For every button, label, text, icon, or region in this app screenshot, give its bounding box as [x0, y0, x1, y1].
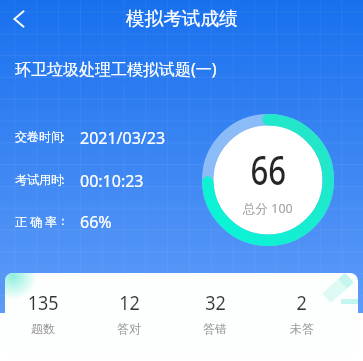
staticText: 模拟考试成绩	[126, 7, 238, 30]
staticText: ：	[57, 129, 69, 144]
staticText: 正 确 率	[15, 213, 58, 229]
staticText: 答对	[117, 321, 141, 336]
staticText: 2	[297, 289, 307, 316]
button[interactable]: Back	[0, 0, 38, 37]
staticText: 交卷时间	[15, 129, 63, 144]
staticText: ：	[57, 213, 69, 228]
staticText: 12	[119, 289, 140, 316]
staticText: 32	[205, 289, 226, 316]
staticText: 2021/03/23	[80, 127, 166, 149]
staticText: ：	[57, 172, 69, 187]
staticText: 未答	[290, 321, 314, 336]
staticText: 66	[250, 143, 286, 196]
button[interactable]: 32	[172, 273, 258, 357]
staticText: 66%	[80, 211, 112, 233]
staticText: 总分 100	[243, 200, 293, 217]
staticText: 00:10:23	[80, 170, 144, 192]
staticText: 考试用时	[15, 172, 63, 187]
staticText: 题数	[31, 321, 55, 336]
button[interactable]: 12	[86, 273, 172, 357]
staticText: 135	[28, 289, 59, 316]
button[interactable]: 2	[259, 273, 345, 357]
button[interactable]: 135	[5, 273, 86, 357]
staticText: 环卫垃圾处理工模拟试题(一)	[15, 58, 217, 80]
staticText: 答错	[203, 321, 227, 336]
